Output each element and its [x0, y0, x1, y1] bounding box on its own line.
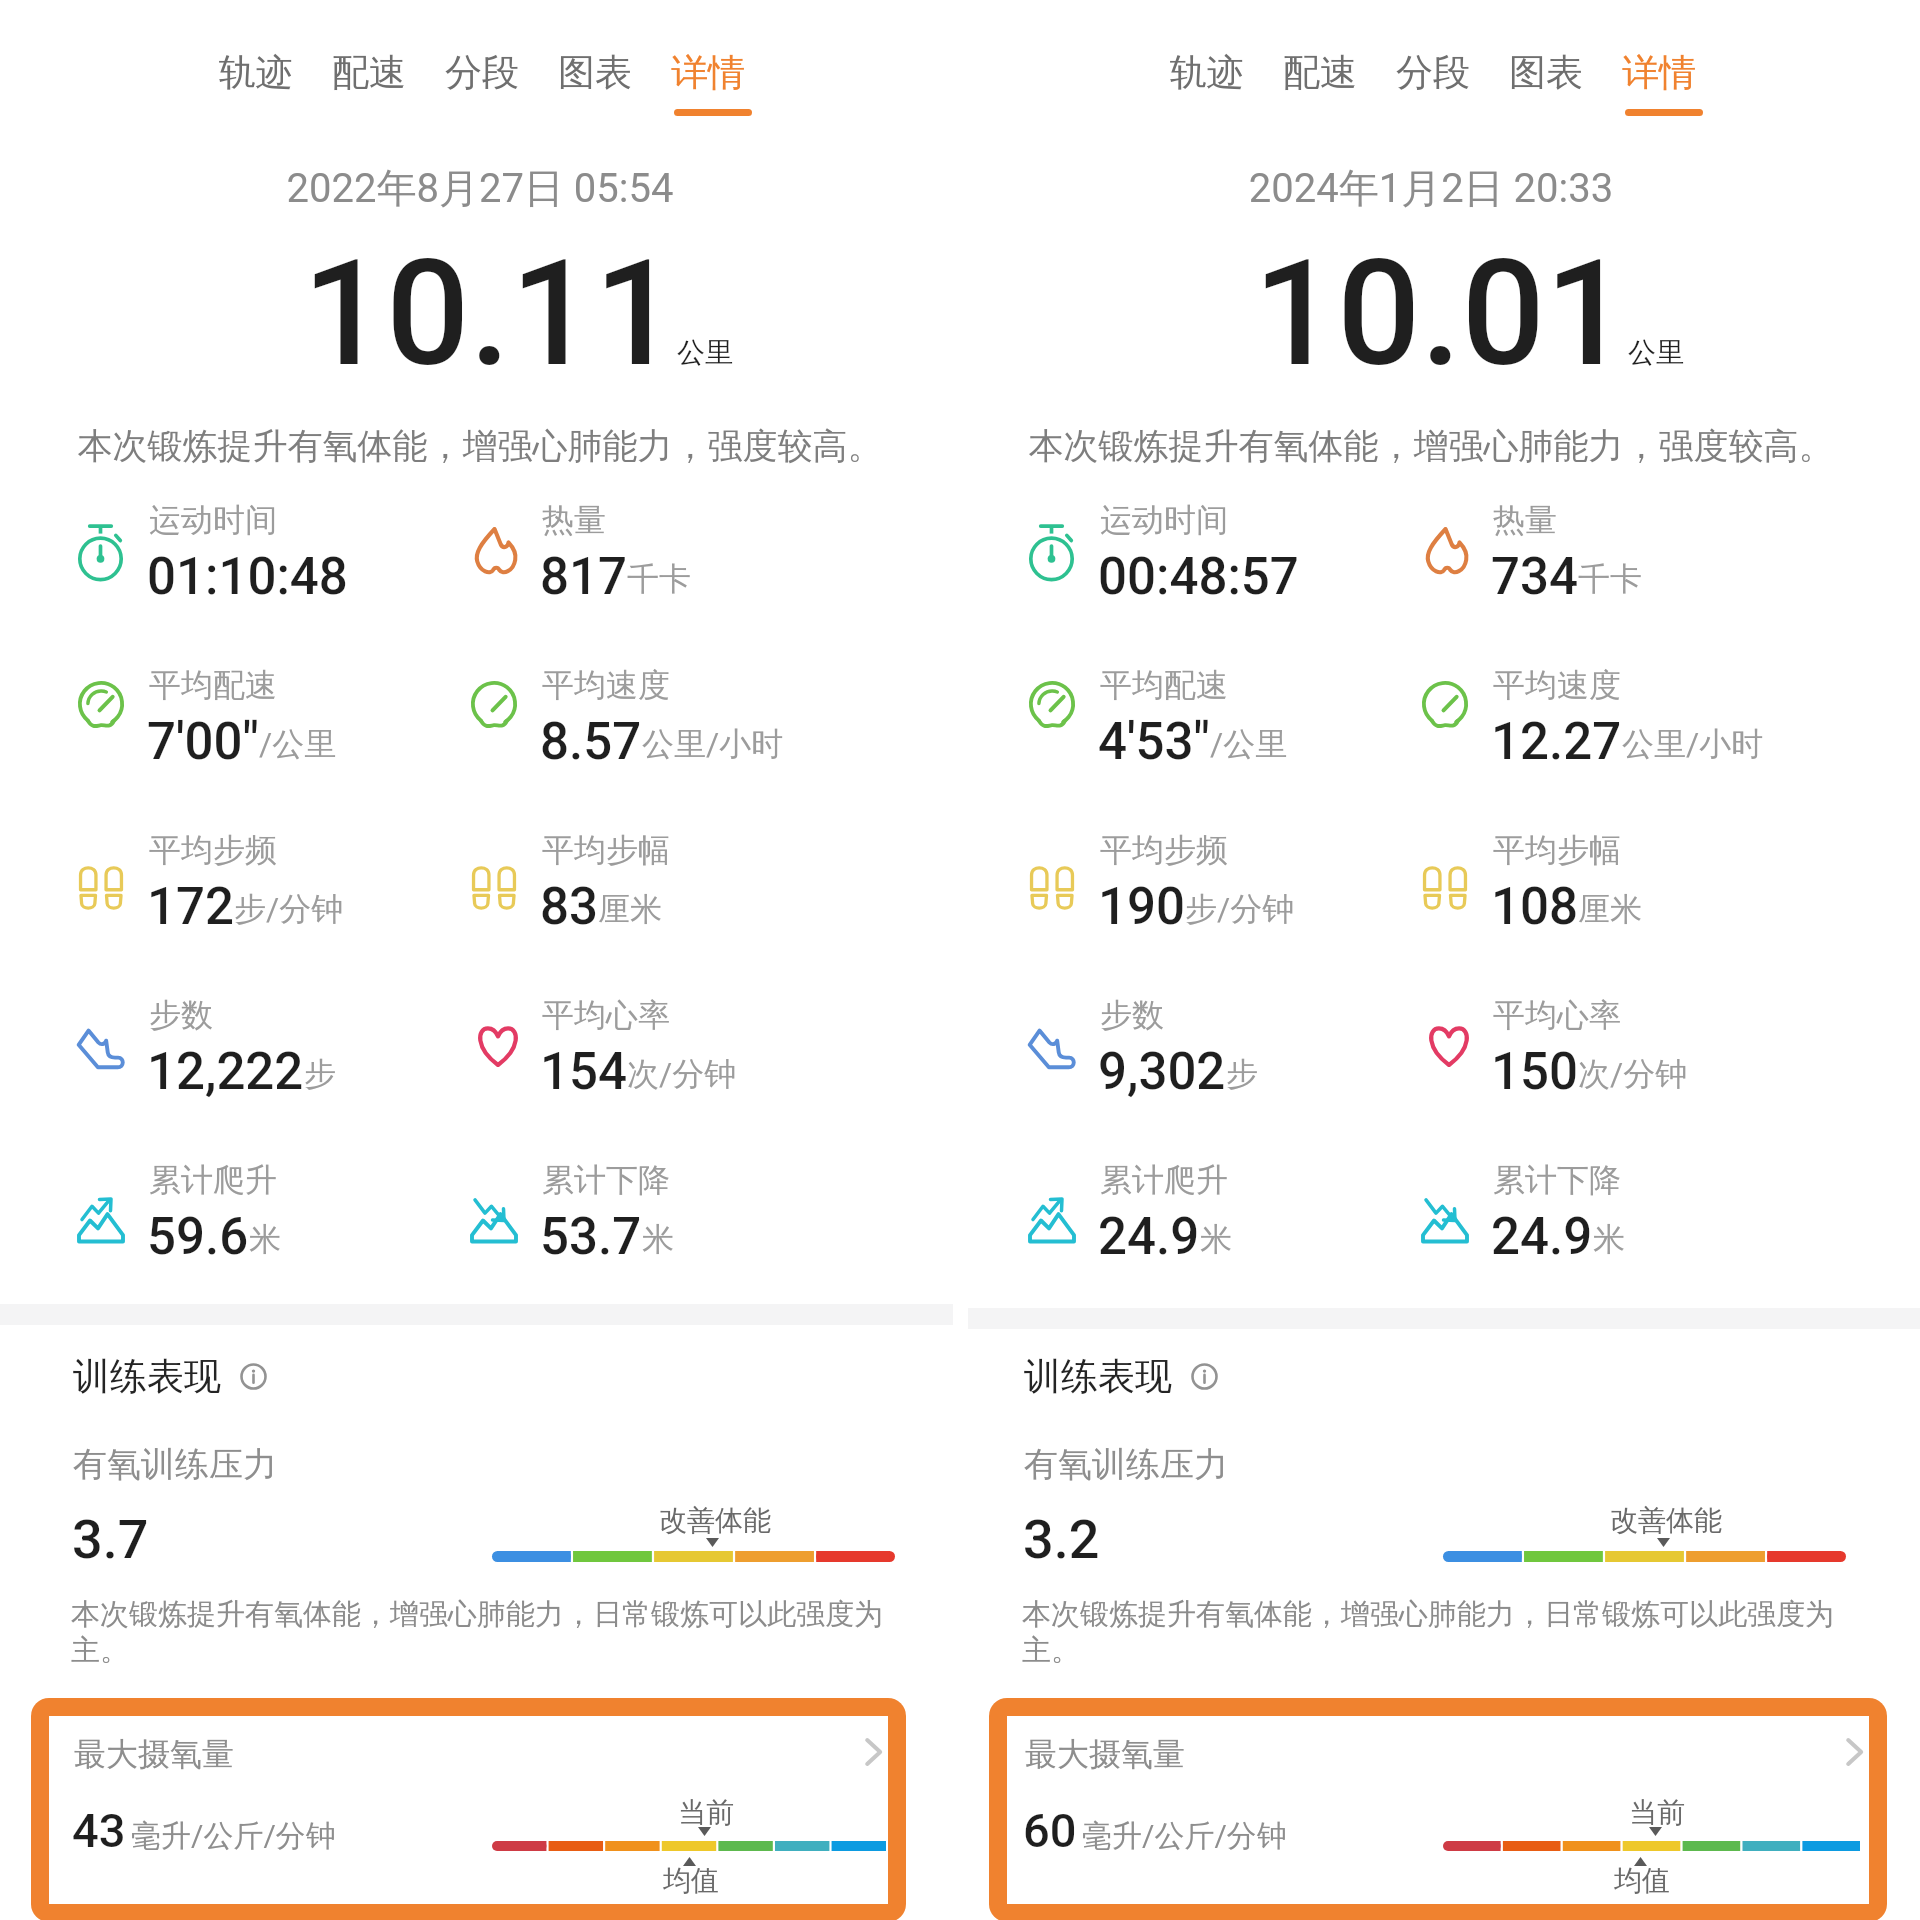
- button[interactable]: 轨迹: [219, 44, 297, 118]
- staticText: 累计爬升: [1100, 1160, 1228, 1200]
- staticText: 平均步频: [149, 830, 277, 870]
- staticText: 均值: [1614, 1863, 1670, 1898]
- staticText: 米: [642, 1219, 674, 1259]
- staticText: 01:10:48: [147, 547, 348, 607]
- staticText: 3.2: [1023, 1508, 1100, 1571]
- staticText: 配速: [1283, 49, 1357, 96]
- staticText: 配速: [332, 49, 406, 96]
- staticText: 步/分钟: [234, 889, 344, 929]
- staticText: 10.11: [10, 228, 970, 400]
- button[interactable]: 图表: [1509, 44, 1587, 118]
- staticText: 图表: [1509, 49, 1583, 96]
- staticText: 步数: [1100, 995, 1164, 1035]
- staticText: 轨迹: [219, 49, 293, 96]
- staticText: 米: [1200, 1219, 1232, 1259]
- staticText: 12.27: [1491, 712, 1622, 772]
- staticText: 本次锻炼提升有氧体能，增强心肺能力，强度较高。: [951, 424, 1911, 468]
- staticText: 热量: [542, 500, 606, 540]
- staticText: 平均速度: [542, 665, 670, 705]
- staticText: 有氧训练压力: [73, 1443, 277, 1486]
- staticText: 改善体能: [1610, 1503, 1722, 1538]
- staticText: 厘米: [598, 889, 662, 929]
- staticText: 2022年8月27日 05:54: [0, 163, 960, 213]
- staticText: 150: [1491, 1042, 1578, 1102]
- staticText: 次/分钟: [1578, 1054, 1688, 1094]
- staticText: 有氧训练压力: [1024, 1443, 1228, 1486]
- staticText: 公里/小时: [642, 724, 784, 764]
- button[interactable]: 轨迹: [1170, 44, 1248, 118]
- staticText: /公里: [1210, 724, 1288, 764]
- staticText: 最大摄氧量: [74, 1734, 234, 1774]
- staticText: 累计下降: [542, 1160, 670, 1200]
- staticText: 10.01: [961, 228, 1920, 400]
- staticText: 热量: [1493, 500, 1557, 540]
- staticText: 108: [1491, 877, 1578, 937]
- staticText: 运动时间: [149, 500, 277, 540]
- staticText: 平均步幅: [1493, 830, 1621, 870]
- staticText: 当前: [1629, 1795, 1685, 1830]
- staticText: 平均速度: [1493, 665, 1621, 705]
- staticText: 图表: [558, 49, 632, 96]
- button[interactable]: 查看最大摄氧量: [862, 1732, 888, 1772]
- staticText: 本次锻炼提升有氧体能，增强心肺能力，日常锻炼可以此强度为主。: [71, 1596, 901, 1668]
- button[interactable]: 配速: [332, 44, 410, 118]
- staticText: 12,222: [147, 1042, 304, 1102]
- staticText: 运动时间: [1100, 500, 1228, 540]
- staticText: 平均配速: [1100, 665, 1228, 705]
- staticText: 3.7: [72, 1508, 149, 1571]
- staticText: 分段: [445, 49, 519, 96]
- staticText: 详情: [671, 49, 745, 96]
- staticText: 训练表现: [73, 1353, 221, 1400]
- staticText: 当前: [678, 1795, 734, 1830]
- button[interactable]: [989, 1698, 1887, 1920]
- staticText: 59.6: [147, 1207, 249, 1267]
- staticText: 24.9: [1491, 1207, 1593, 1267]
- staticText: 平均步幅: [542, 830, 670, 870]
- staticText: 次/分钟: [627, 1054, 737, 1094]
- staticText: 步数: [149, 995, 213, 1035]
- staticText: 190: [1098, 877, 1185, 937]
- button[interactable]: 详情: [1622, 44, 1700, 118]
- staticText: 2024年1月2日 20:33: [951, 163, 1911, 213]
- staticText: 平均心率: [542, 995, 670, 1035]
- staticText: 172: [147, 877, 234, 937]
- staticText: 厘米: [1578, 889, 1642, 929]
- staticText: 步: [304, 1054, 336, 1094]
- staticText: 00:48:57: [1098, 547, 1299, 607]
- staticText: 步/分钟: [1185, 889, 1295, 929]
- button[interactable]: 查看最大摄氧量: [1843, 1732, 1869, 1772]
- button[interactable]: 图表: [558, 44, 636, 118]
- staticText: 训练表现: [1024, 1353, 1172, 1400]
- staticText: 7'00": [147, 712, 259, 772]
- button[interactable]: 训练表现说明: [240, 1363, 267, 1390]
- staticText: 千卡: [1578, 559, 1642, 599]
- staticText: 平均心率: [1493, 995, 1621, 1035]
- staticText: 累计爬升: [149, 1160, 277, 1200]
- staticText: 83: [540, 877, 598, 937]
- staticText: 累计下降: [1493, 1160, 1621, 1200]
- staticText: 米: [1593, 1219, 1625, 1259]
- staticText: 43: [72, 1803, 126, 1858]
- button[interactable]: 详情: [671, 44, 749, 118]
- staticText: 步: [1226, 1054, 1258, 1094]
- staticText: 平均配速: [149, 665, 277, 705]
- staticText: 改善体能: [659, 1503, 771, 1538]
- staticText: 平均步频: [1100, 830, 1228, 870]
- staticText: 本次锻炼提升有氧体能，增强心肺能力，强度较高。: [0, 424, 960, 468]
- button[interactable]: [31, 1698, 906, 1920]
- staticText: 8.57: [540, 712, 642, 772]
- staticText: 734: [1491, 547, 1578, 607]
- staticText: 毫升/公斤/分钟: [1082, 1817, 1287, 1855]
- button[interactable]: 配速: [1283, 44, 1361, 118]
- staticText: 公里: [1628, 335, 1684, 370]
- staticText: 53.7: [540, 1207, 642, 1267]
- staticText: 4'53": [1098, 712, 1210, 772]
- staticText: 本次锻炼提升有氧体能，增强心肺能力，日常锻炼可以此强度为主。: [1022, 1596, 1852, 1668]
- button[interactable]: 分段: [445, 44, 523, 118]
- staticText: 轨迹: [1170, 49, 1244, 96]
- staticText: 公里: [677, 335, 733, 370]
- staticText: 154: [540, 1042, 627, 1102]
- staticText: 24.9: [1098, 1207, 1200, 1267]
- button[interactable]: 分段: [1396, 44, 1474, 118]
- button[interactable]: 训练表现说明: [1191, 1363, 1218, 1390]
